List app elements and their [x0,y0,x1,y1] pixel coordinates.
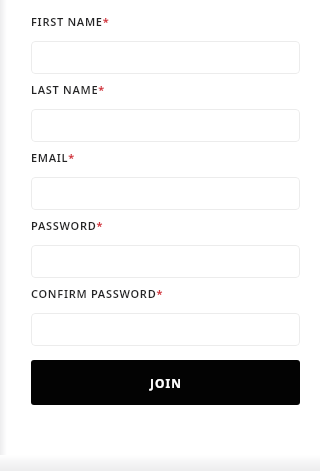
staticText: CONFIRM PASSWORD* [31,286,163,301]
button[interactable] [31,109,300,142]
staticText: EMAIL* [31,150,75,165]
button[interactable] [31,177,300,210]
staticText: LAST NAME* [31,82,105,97]
button[interactable] [31,313,300,346]
button[interactable] [31,245,300,278]
staticText: FIRST NAME* [31,14,109,29]
staticText: PASSWORD* [31,218,103,233]
button[interactable] [31,41,300,74]
button[interactable]: JOIN [31,360,300,405]
staticText: JOIN [150,375,182,391]
